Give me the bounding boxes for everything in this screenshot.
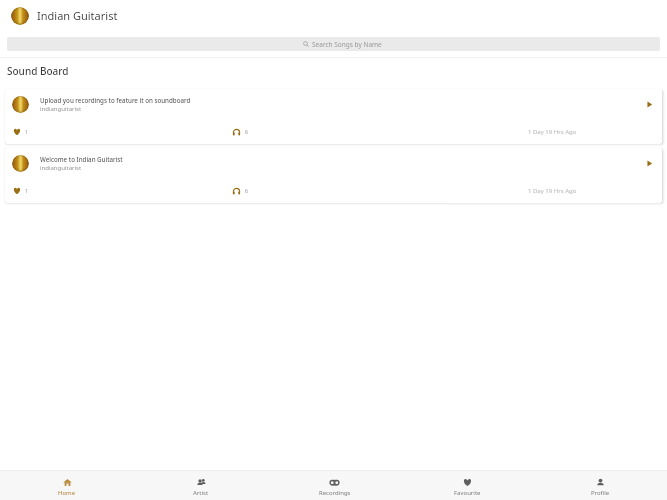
button[interactable]: Welcome to Indian Guitarist (5, 148, 662, 203)
staticText: Welcome to Indian Guitarist (40, 155, 123, 163)
staticText: Indian Guitarist (37, 8, 118, 23)
button[interactable]: Home (0, 471, 134, 497)
staticText: Search Songs by Name (312, 40, 382, 49)
staticText: Upload you recordings to feature it on s… (40, 96, 191, 104)
staticText: 1 (25, 188, 28, 195)
staticText: Home (58, 489, 76, 497)
staticText: 6 (245, 188, 248, 195)
staticText: Sound Board (7, 64, 69, 78)
staticText: Recordings (319, 489, 351, 497)
button[interactable]: Profile (534, 471, 667, 497)
button[interactable]: Profile photo (11, 7, 29, 25)
staticText: indianguitarist (40, 164, 82, 172)
other: Like (13, 187, 21, 195)
staticText: Artist (193, 489, 209, 497)
button[interactable]: Like (13, 128, 28, 136)
button[interactable]: Play (645, 159, 654, 168)
button[interactable]: Artist (134, 471, 268, 497)
staticText: 1 Day 19 Hrs Ago (528, 187, 577, 195)
button[interactable]: Recordings (268, 471, 401, 497)
staticText: 6 (245, 129, 248, 136)
button[interactable]: Favourite (401, 471, 534, 497)
staticText: 1 Day 19 Hrs Ago (528, 128, 577, 136)
other: Like (13, 128, 21, 136)
staticText: Favourite (454, 489, 481, 497)
staticText: indianguitarist (40, 105, 82, 113)
button[interactable]: Upload you recordings to feature it on s… (5, 89, 662, 144)
button[interactable]: Play (645, 100, 654, 109)
button[interactable]: Like (13, 187, 28, 195)
staticText: 1 (25, 129, 28, 136)
staticText: Profile (591, 489, 610, 497)
button[interactable]: Search Songs by Name (7, 37, 660, 51)
